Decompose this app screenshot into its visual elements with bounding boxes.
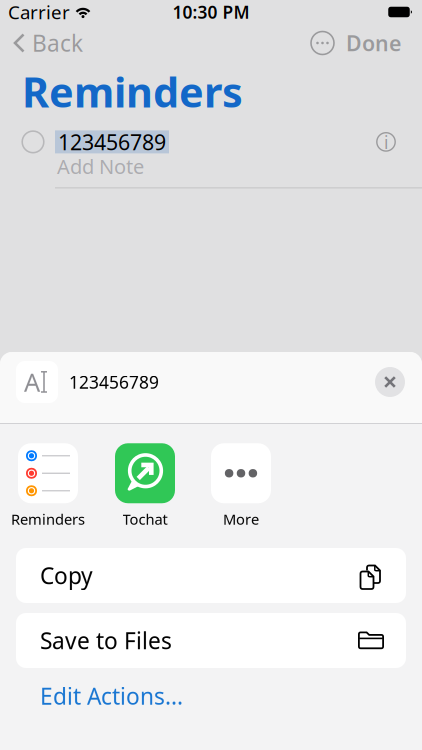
staticText: Carrier: [8, 0, 70, 24]
staticText: Back: [32, 28, 83, 58]
staticText: A: [24, 365, 40, 399]
button[interactable]: Copy: [16, 548, 406, 603]
staticText: Reminders: [22, 64, 243, 119]
button[interactable]: Done: [335, 29, 401, 57]
staticText: 10:30 PM: [172, 0, 249, 23]
staticText: Add Note: [57, 153, 144, 179]
button[interactable]: More options: [310, 30, 335, 55]
button[interactable]: Complete reminder: [21, 130, 44, 153]
staticText: 123456789: [69, 370, 159, 393]
staticText: More: [223, 509, 259, 529]
button[interactable]: Details: [376, 132, 396, 152]
button[interactable]: Tochat: [115, 443, 175, 529]
staticText: i: [384, 131, 388, 154]
button[interactable]: Reminders: [11, 443, 85, 529]
button[interactable]: More: [211, 443, 271, 529]
staticText: Save to Files: [40, 625, 172, 655]
staticText: Done: [346, 29, 401, 57]
staticText: Copy: [40, 560, 93, 590]
staticText: 123456789: [58, 128, 166, 156]
button[interactable]: Close: [375, 367, 405, 397]
button[interactable]: Save to Files: [16, 613, 406, 668]
button[interactable]: Back: [13, 28, 83, 58]
staticText: Reminders: [11, 509, 85, 529]
button[interactable]: Edit Actions...: [40, 681, 183, 711]
staticText: Edit Actions...: [40, 681, 183, 711]
staticText: Tochat: [122, 509, 167, 529]
